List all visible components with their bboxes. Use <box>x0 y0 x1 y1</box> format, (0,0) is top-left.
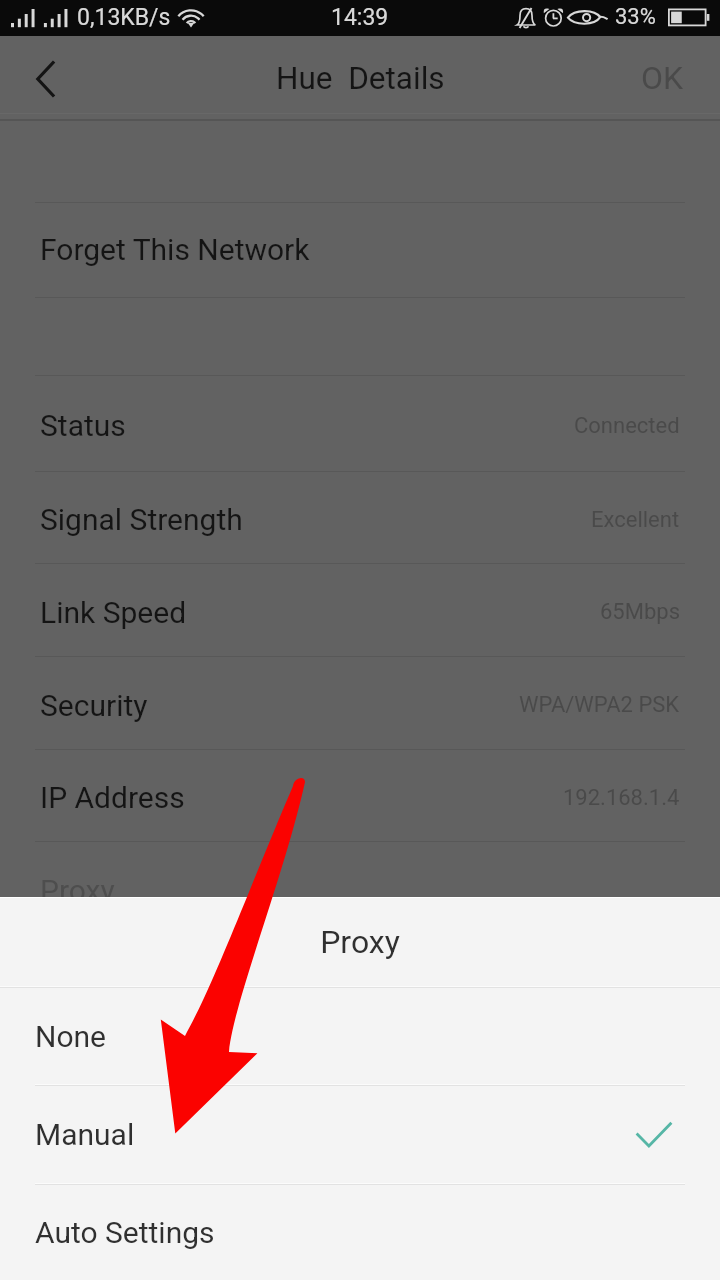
staticText: WPA/WPA2 PSK <box>519 692 680 718</box>
staticText: Forget This Network <box>40 232 310 267</box>
staticText: Signal Strength <box>40 502 243 537</box>
button[interactable]: Security <box>0 657 720 749</box>
button[interactable]: Proxy <box>0 842 720 935</box>
staticText: 0,13KB/s <box>77 4 171 31</box>
other: Selected <box>629 1110 679 1160</box>
button[interactable]: OK <box>641 59 684 97</box>
staticText: Excellent <box>591 507 680 533</box>
button[interactable]: Forget This Network <box>0 203 720 297</box>
button[interactable]: Manual <box>0 1086 720 1183</box>
staticText: 65Mbps <box>600 599 680 625</box>
staticText: Security <box>40 688 148 723</box>
staticText: 192.168.1.4 <box>563 785 680 811</box>
staticText: None <box>35 1019 106 1054</box>
staticText: Hue Details <box>276 60 445 97</box>
button[interactable]: IP Address <box>0 750 720 841</box>
button[interactable]: Back <box>0 37 76 113</box>
staticText: IP Address <box>40 780 185 815</box>
button[interactable]: Auto Settings <box>0 1185 720 1280</box>
staticText: Proxy <box>40 873 115 908</box>
staticText: Connected <box>574 413 680 439</box>
button[interactable]: Link Speed <box>0 564 720 656</box>
staticText: Manual <box>35 1117 135 1152</box>
staticText: 14:39 <box>331 4 389 31</box>
staticText: Link Speed <box>40 595 187 630</box>
button[interactable]: None <box>0 988 720 1084</box>
staticText: Auto Settings <box>35 1215 215 1250</box>
staticText: 33% <box>615 4 656 30</box>
staticText: OK <box>641 59 684 97</box>
button[interactable]: Status <box>0 376 720 471</box>
button[interactable]: Signal Strength <box>0 472 720 563</box>
staticText: Proxy <box>320 923 400 961</box>
staticText: Status <box>40 408 126 443</box>
